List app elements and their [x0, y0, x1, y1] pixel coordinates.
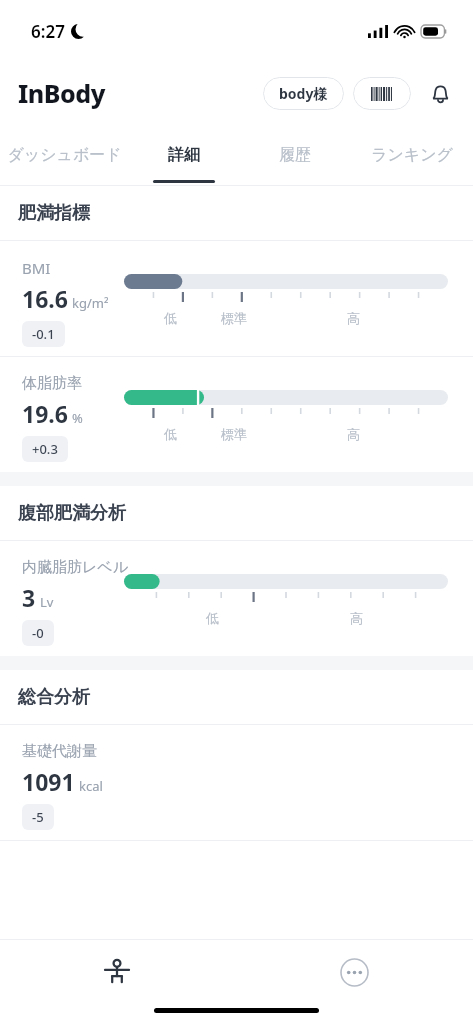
staticText: 低 [164, 426, 177, 442]
staticText: ランキング [371, 145, 453, 165]
staticText: body様 [279, 84, 328, 103]
button[interactable]: 履歴 [239, 124, 350, 186]
staticText: InBody [18, 76, 105, 110]
staticText: 標準 [221, 310, 247, 326]
button[interactable]: body様 [263, 77, 344, 110]
staticText: -0.1 [32, 325, 55, 343]
staticText: 体脂肪率 [22, 374, 82, 393]
staticText: 16.6 [22, 283, 68, 314]
button[interactable]: ランキング [350, 124, 473, 186]
staticText: 高 [347, 426, 360, 442]
staticText: +0.3 [32, 440, 58, 458]
staticText: 3 [22, 582, 36, 613]
staticText: BMI [22, 258, 51, 278]
staticText: Lv [40, 593, 54, 611]
staticText: ダッシュボード [7, 145, 122, 165]
staticText: 標準 [221, 426, 247, 442]
staticText: 肥満指標 [18, 202, 90, 225]
staticText: 基礎代謝量 [22, 742, 97, 761]
staticText: kg/m² [72, 294, 109, 312]
button[interactable]: Barcode [353, 77, 411, 110]
staticText: 高 [350, 610, 363, 626]
staticText: 詳細 [168, 145, 200, 165]
button[interactable]: Body composition [93, 948, 141, 996]
button[interactable]: Notifications [423, 76, 457, 110]
staticText: 6:27 [31, 20, 65, 43]
staticText: 高 [347, 310, 360, 326]
staticText: 腹部肥満分析 [18, 502, 126, 525]
staticText: 内臓脂肪レベル [22, 558, 129, 577]
staticText: 低 [164, 310, 177, 326]
staticText: 低 [206, 610, 219, 626]
staticText: 履歴 [279, 145, 311, 165]
staticText: -5 [32, 808, 44, 826]
staticText: -0 [32, 624, 44, 642]
staticText: 総合分析 [18, 686, 90, 709]
staticText: % [72, 409, 83, 427]
button[interactable]: ダッシュボード [0, 124, 128, 186]
button[interactable]: 詳細 [128, 124, 239, 186]
staticText: 1091 [22, 766, 75, 797]
staticText: kcal [79, 777, 103, 795]
button[interactable]: More options [330, 948, 378, 996]
staticText: 19.6 [22, 398, 68, 429]
